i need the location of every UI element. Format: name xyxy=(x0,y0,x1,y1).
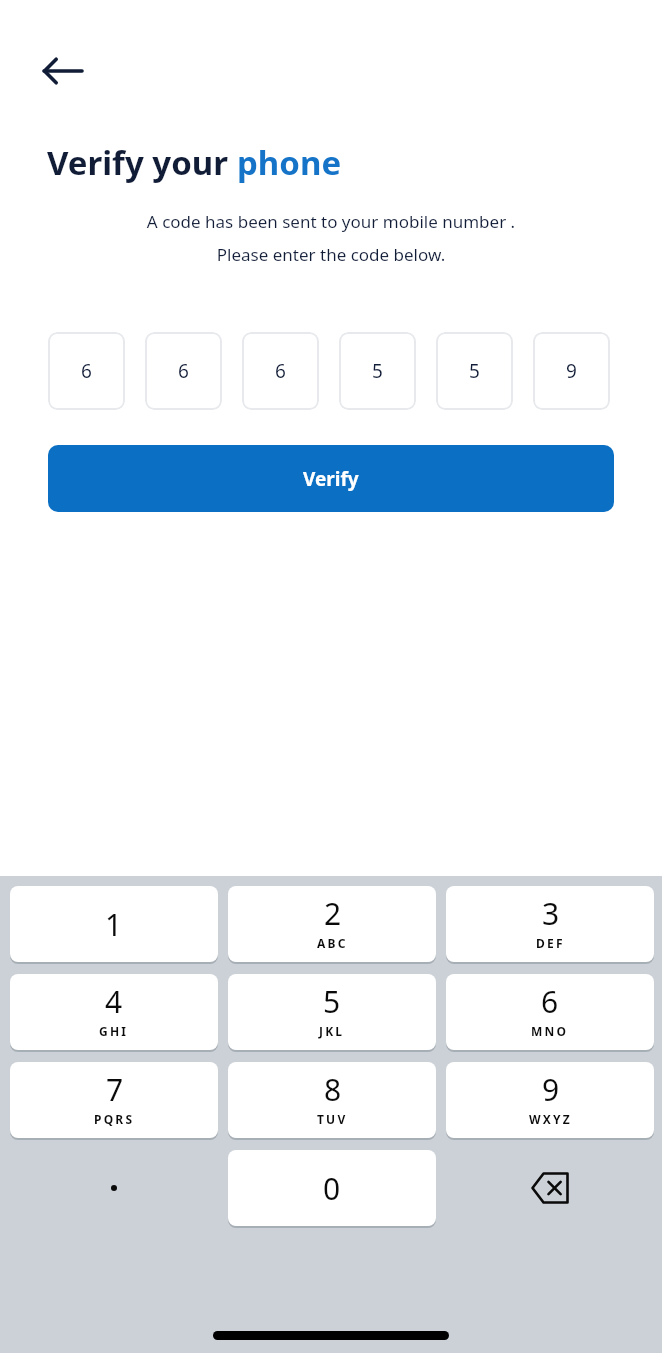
button[interactable]: 6 xyxy=(242,332,319,410)
staticText: 5 xyxy=(469,358,480,384)
staticText: 1 xyxy=(105,904,123,945)
button[interactable]: 6 xyxy=(48,332,125,410)
staticText: phone xyxy=(237,140,342,185)
staticText: 2 xyxy=(324,893,342,934)
staticText: DEF xyxy=(536,935,565,951)
button[interactable]: 5 xyxy=(436,332,513,410)
staticText: 5 xyxy=(323,981,341,1022)
button[interactable]: 9 xyxy=(446,1062,654,1138)
button[interactable]: 9 xyxy=(533,332,610,410)
staticText: 5 xyxy=(372,358,383,384)
staticText: ABC xyxy=(317,935,348,951)
button[interactable]: 6 xyxy=(145,332,222,410)
staticText: PQRS xyxy=(94,1111,135,1127)
staticText: 0 xyxy=(323,1168,341,1209)
staticText: 6 xyxy=(275,358,286,384)
staticText: 4 xyxy=(105,981,123,1022)
button[interactable]: 5 xyxy=(228,974,436,1050)
button[interactable]: Backspace xyxy=(446,1150,654,1226)
button[interactable]: 2 xyxy=(228,886,436,962)
staticText: GHI xyxy=(99,1023,129,1039)
button[interactable]: 0 xyxy=(228,1150,436,1226)
staticText: 8 xyxy=(324,1069,342,1110)
staticText: A code has been sent to your mobile numb… xyxy=(44,210,618,266)
staticText: MNO xyxy=(531,1023,569,1039)
button[interactable]: 4 xyxy=(10,974,218,1050)
button[interactable]: 8 xyxy=(228,1062,436,1138)
button[interactable]: 5 xyxy=(339,332,416,410)
staticText: WXYZ xyxy=(529,1111,572,1127)
staticText: TUV xyxy=(317,1111,348,1127)
button[interactable]: Verify xyxy=(48,445,614,512)
staticText: 9 xyxy=(566,358,577,384)
staticText: 6 xyxy=(541,981,559,1022)
staticText: 6 xyxy=(178,358,189,384)
staticText: Verify xyxy=(303,466,359,492)
staticText: 9 xyxy=(542,1069,560,1110)
staticText: 7 xyxy=(106,1069,124,1110)
button[interactable]: 7 xyxy=(10,1062,218,1138)
button[interactable]: Back xyxy=(34,42,92,100)
button[interactable]: 3 xyxy=(446,886,654,962)
staticText: JKL xyxy=(319,1023,345,1039)
staticText: 6 xyxy=(81,358,92,384)
staticText: Verify your xyxy=(47,140,237,185)
button[interactable]: 6 xyxy=(446,974,654,1050)
button[interactable]: 1 xyxy=(10,886,218,962)
staticText: 3 xyxy=(542,893,560,934)
